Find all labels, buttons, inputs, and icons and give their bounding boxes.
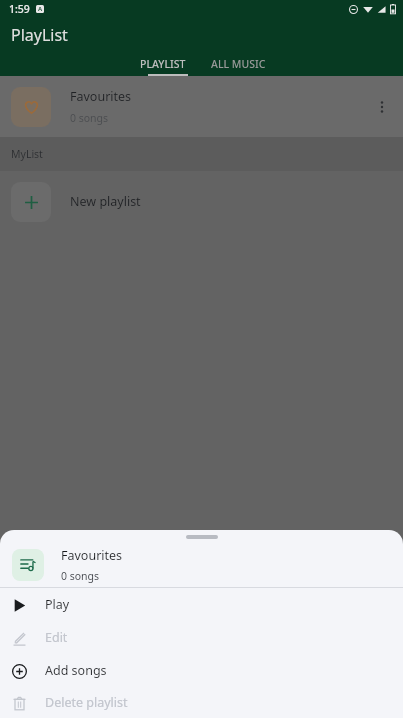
button[interactable]: More options — [364, 89, 400, 125]
staticText: Delete playlist — [45, 694, 128, 711]
staticText: MyList — [11, 147, 43, 161]
staticText: New playlist — [70, 193, 141, 210]
button[interactable]: Play — [0, 588, 403, 621]
button[interactable]: Edit — [0, 621, 403, 654]
staticText: Favourites — [61, 547, 123, 564]
staticText: Edit — [45, 629, 68, 646]
staticText: Play — [45, 596, 70, 613]
staticText: 0 songs — [70, 111, 109, 125]
staticText: PlayList — [11, 24, 68, 46]
staticText: PLAYLIST — [140, 57, 186, 71]
staticText: ALL MUSIC — [211, 57, 266, 71]
button[interactable]: Favourites — [0, 542, 403, 587]
staticText: A — [38, 5, 43, 13]
staticText: Add songs — [45, 662, 107, 679]
button[interactable]: PLAYLIST — [127, 51, 199, 76]
button[interactable]: Add songs — [0, 654, 403, 687]
staticText: Favourites — [70, 88, 132, 105]
button[interactable]: ALL MUSIC — [199, 51, 277, 76]
staticText: 0 songs — [61, 569, 100, 583]
button[interactable]: Delete playlist — [0, 687, 403, 718]
staticText: 1:59 — [9, 2, 30, 16]
button[interactable]: Favourites — [0, 76, 403, 137]
button[interactable]: New playlist — [0, 171, 403, 232]
